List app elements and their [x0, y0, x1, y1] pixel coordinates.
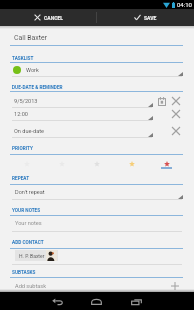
- button[interactable]: H. P. Baxter: [15, 250, 58, 261]
- staticText: 04:10: [177, 1, 192, 8]
- button[interactable]: 12:00: [0, 109, 152, 120]
- button[interactable]: Priority 5: [149, 156, 184, 172]
- button[interactable]: Back: [39, 292, 75, 310]
- staticText: CANCEL: [44, 15, 63, 21]
- staticText: REPEAT: [12, 176, 30, 182]
- button[interactable]: CANCEL: [0, 9, 96, 26]
- button[interactable]: Home: [78, 292, 114, 310]
- button[interactable]: Clear: [170, 125, 182, 137]
- staticText: Call Baxter: [14, 34, 47, 42]
- staticText: TASKLIST: [12, 56, 34, 62]
- button[interactable]: Clear: [170, 108, 182, 120]
- button[interactable]: Clear: [170, 95, 182, 107]
- staticText: Work: [26, 67, 39, 74]
- staticText: Don't repeat: [15, 189, 45, 196]
- staticText: On due-date: [14, 128, 45, 135]
- button[interactable]: Add subtask: [0, 280, 160, 292]
- staticText: 9/5/2013: [14, 98, 38, 105]
- staticText: Add subtask: [15, 283, 47, 290]
- button[interactable]: Work: [0, 64, 194, 76]
- button[interactable]: Add subtask: [168, 279, 181, 292]
- button[interactable]: Priority 4: [114, 156, 149, 172]
- staticText: SAVE: [144, 15, 157, 21]
- staticText: SUBTASKS: [12, 270, 36, 276]
- button[interactable]: On due-date: [0, 126, 152, 137]
- button[interactable]: Recent apps: [118, 292, 154, 310]
- button[interactable]: Pick date: [156, 95, 168, 107]
- button[interactable]: Don't repeat: [0, 186, 194, 199]
- button[interactable]: 9/5/2013: [0, 96, 152, 107]
- staticText: ADD CONTACT: [12, 240, 44, 246]
- staticText: Your notes: [15, 220, 42, 227]
- staticText: DUE-DATE & REMINDER: [12, 85, 63, 91]
- button[interactable]: SAVE: [97, 9, 194, 26]
- button[interactable]: Your notes: [0, 217, 194, 230]
- staticText: PRIORITY: [12, 146, 33, 152]
- button[interactable]: Call Baxter: [0, 29, 194, 45]
- staticText: 12:00: [14, 111, 28, 118]
- staticText: H. P. Baxter: [19, 253, 45, 259]
- staticText: YOUR NOTES: [12, 208, 41, 214]
